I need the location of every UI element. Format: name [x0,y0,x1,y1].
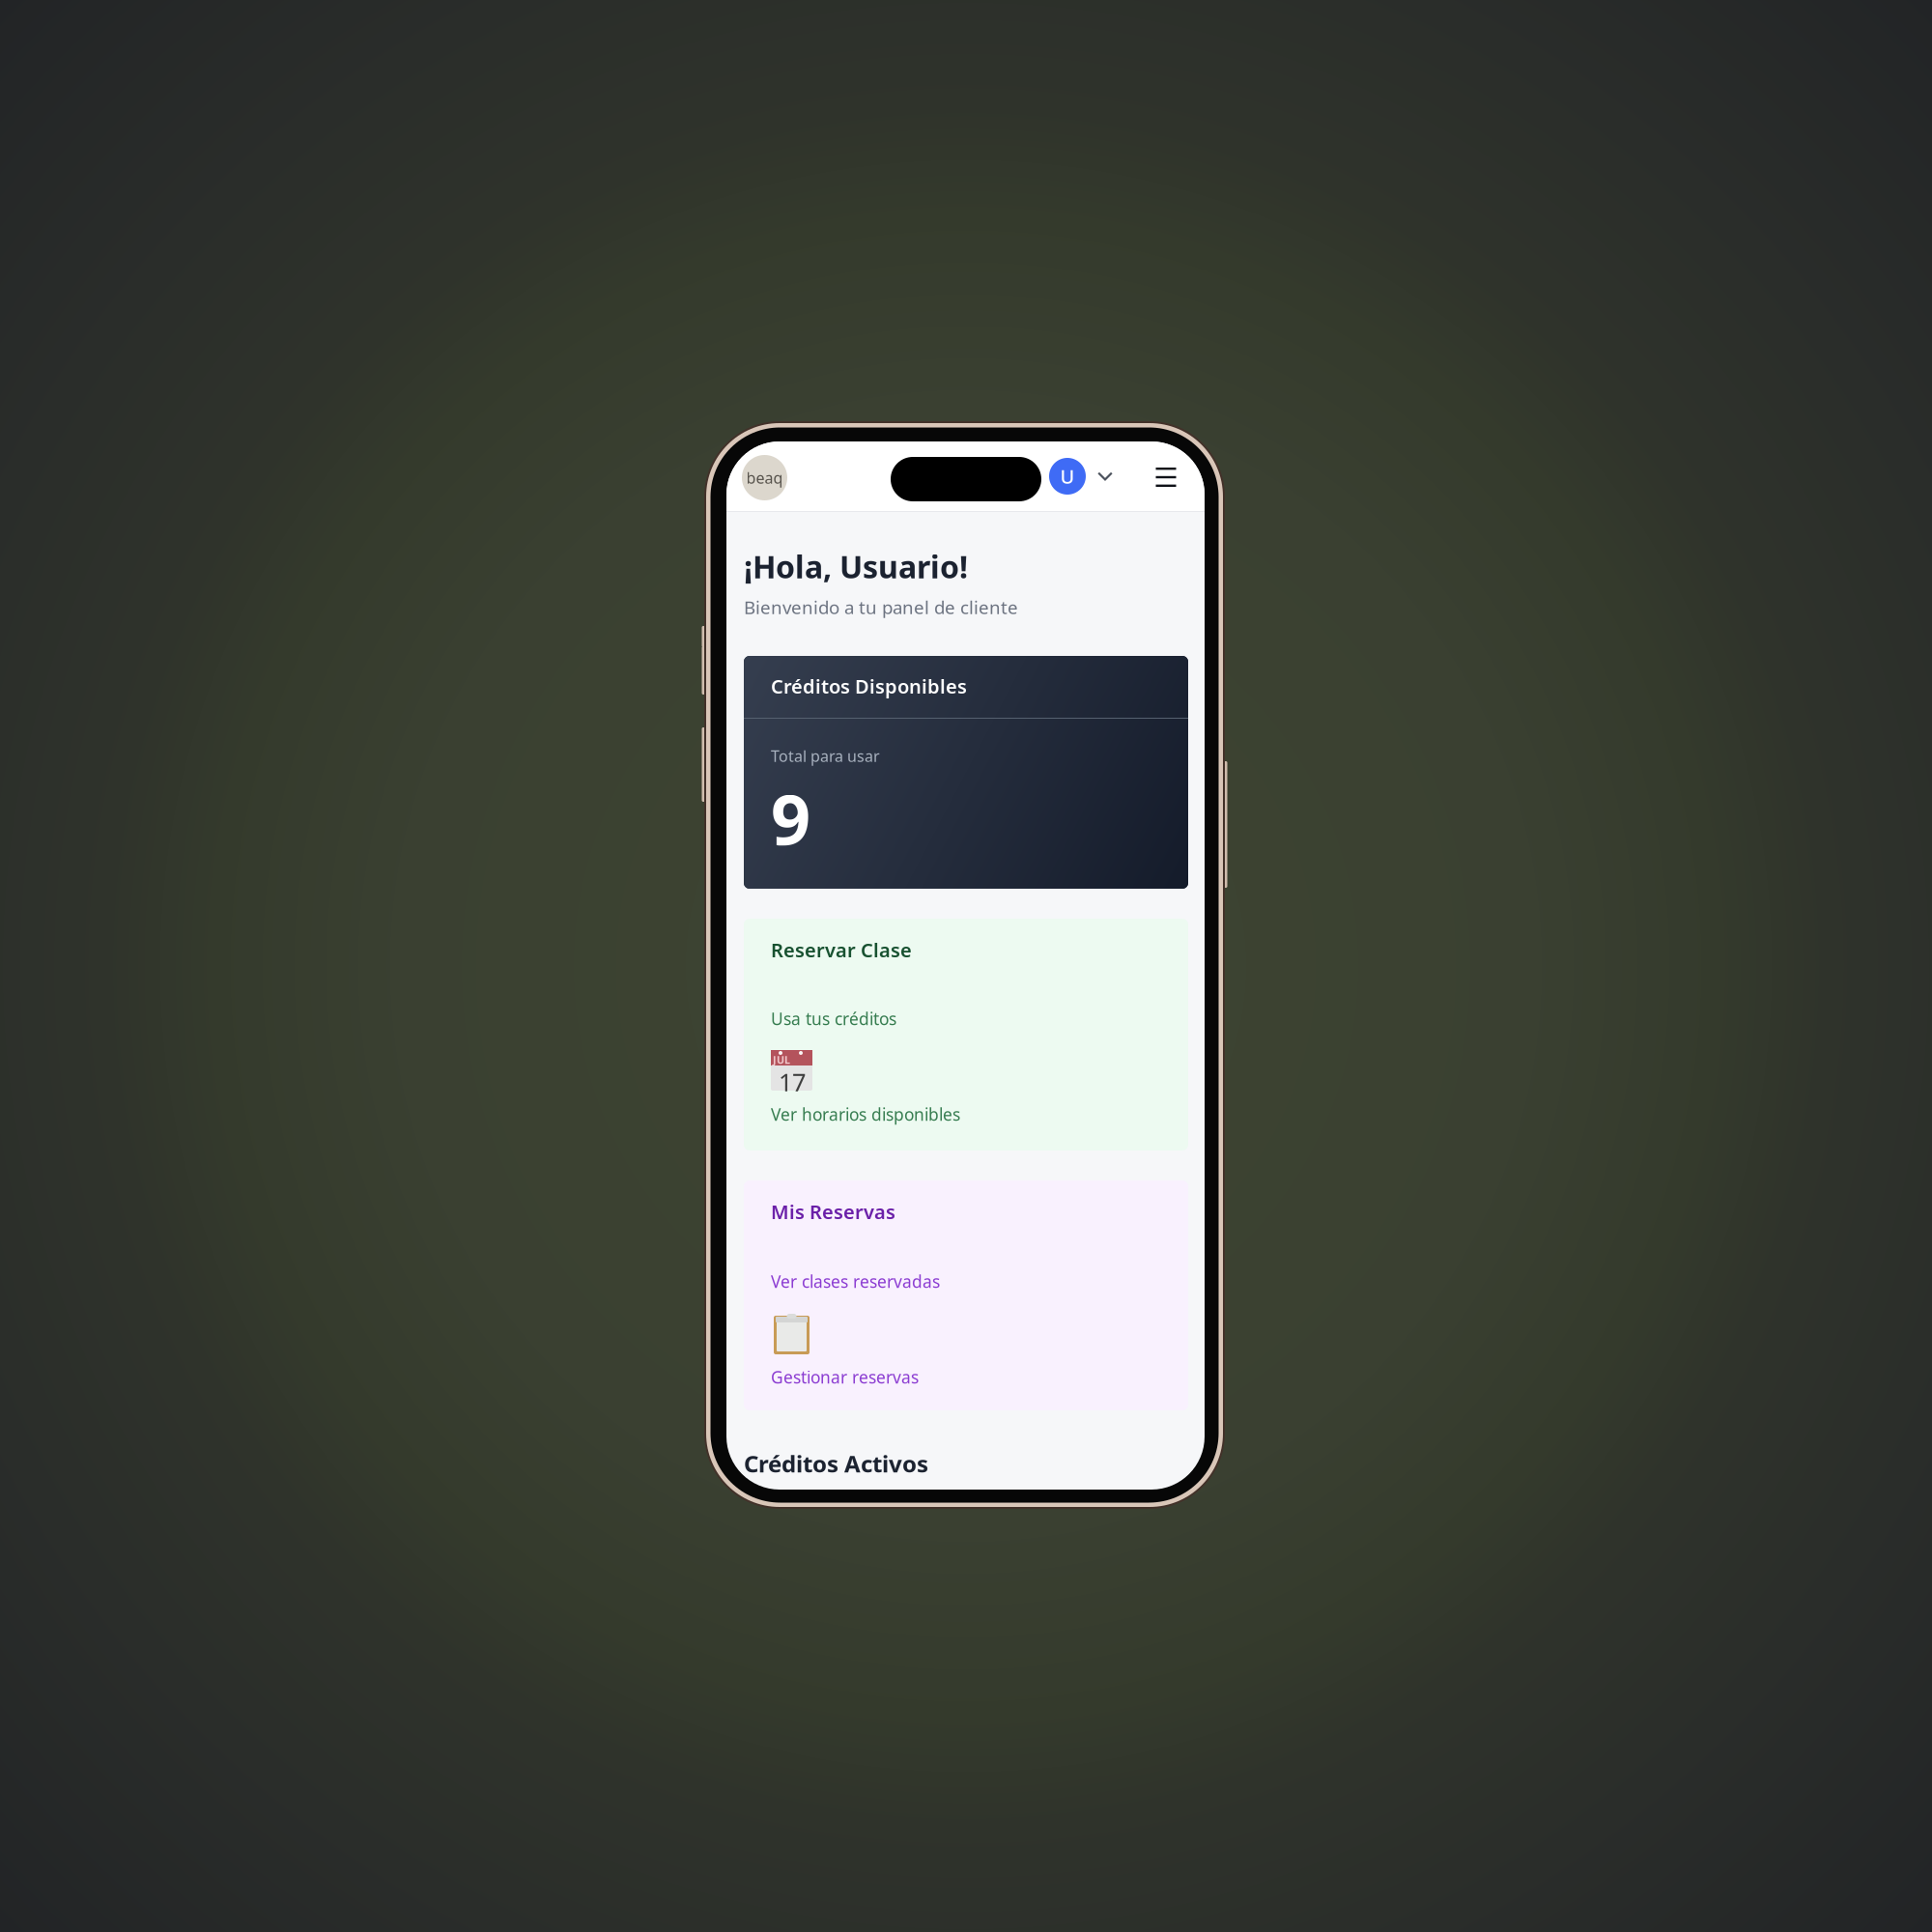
staticText: Ver clases reservadas [771,1270,940,1293]
staticText: Bienvenido a tu panel de cliente [744,595,1018,619]
staticText: Créditos Disponibles [771,673,967,699]
staticText: Total para usar [771,746,880,766]
staticText: Usa tus créditos [771,1008,896,1030]
staticText: JUL [773,1053,790,1067]
button[interactable]: beaq home [742,455,787,500]
button[interactable]: Open menu [1150,461,1182,494]
staticText: Mis Reservas [771,1199,895,1225]
button[interactable]: Reservar Clase [744,919,1188,1151]
staticText: Gestionar reservas [771,1366,919,1388]
button[interactable]: Account menu [1049,458,1119,495]
staticText: 9 [771,772,810,864]
staticText: Ver horarios disponibles [771,1103,960,1125]
staticText: U [1060,463,1075,489]
staticText: ¡Hola, Usuario! [744,546,968,587]
staticText: beaq [746,467,783,488]
button[interactable]: Mis Reservas [744,1180,1188,1410]
staticText: Créditos Activos [744,1448,928,1479]
staticText: 17 [779,1065,806,1098]
staticText: Reservar Clase [771,937,912,963]
